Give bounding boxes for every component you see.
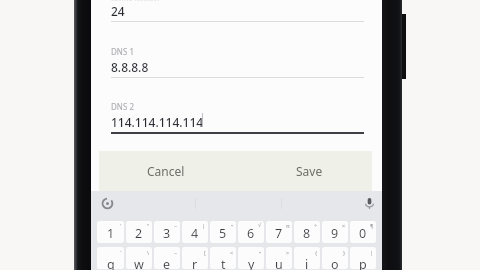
staticText: 8: [303, 225, 311, 242]
staticText: q: [107, 256, 115, 270]
button[interactable]: [126, 247, 152, 269]
staticText: |: [202, 222, 206, 229]
button[interactable]: [182, 247, 208, 269]
staticText: o: [331, 256, 339, 270]
staticText: Save: [296, 163, 323, 179]
staticText: 2: [135, 225, 143, 242]
staticText: p: [359, 256, 367, 270]
staticText: ~: [174, 222, 178, 229]
staticText: ÷: [314, 222, 318, 229]
button[interactable]: [182, 221, 208, 243]
staticText: DNS 1: [111, 46, 134, 57]
button[interactable]: [294, 221, 320, 243]
staticText: |: [370, 249, 374, 256]
staticText: √: [258, 222, 262, 228]
staticText: 8.8.8.8: [111, 59, 149, 75]
button[interactable]: [126, 221, 152, 243]
button[interactable]: [97, 221, 124, 243]
button[interactable]: Save: [280, 151, 339, 191]
staticText: ¶: [370, 222, 374, 229]
button[interactable]: [238, 247, 264, 269]
button[interactable]: [350, 221, 376, 243]
button[interactable]: [322, 221, 348, 243]
staticText: 0: [359, 225, 367, 242]
staticText: 9: [331, 225, 339, 242]
staticText: 24: [111, 3, 125, 19]
staticText: y: [248, 256, 255, 270]
staticText: w: [134, 256, 144, 270]
button[interactable]: [154, 247, 180, 269]
button[interactable]: [154, 221, 180, 243]
button[interactable]: [210, 247, 236, 269]
button[interactable]: [210, 221, 236, 243]
button[interactable]: Clipboard: [99, 195, 115, 211]
staticText: 114.114.114.114: [111, 114, 204, 130]
staticText: ": [147, 222, 150, 229]
staticText: •: [231, 222, 234, 229]
button[interactable]: [322, 247, 348, 269]
staticText: Prefix length: [111, 0, 159, 1]
staticText: 6: [247, 225, 255, 242]
button[interactable]: [266, 221, 292, 243]
staticText: π: [286, 222, 290, 229]
button[interactable]: Voice input: [361, 195, 377, 211]
staticText: 7: [275, 225, 283, 242]
button[interactable]: [97, 247, 124, 269]
staticText: u: [275, 256, 283, 270]
staticText: }: [343, 249, 346, 256]
button[interactable]: Cancel: [129, 151, 202, 191]
staticText: ×: [342, 222, 346, 229]
staticText: {: [315, 249, 318, 256]
staticText: \: [147, 249, 150, 256]
staticText: i: [305, 256, 309, 270]
staticText: t: [221, 256, 226, 270]
staticText: [: [204, 249, 206, 256]
staticText: e: [163, 256, 171, 270]
staticText: 3: [163, 225, 171, 242]
staticText: >: [286, 249, 290, 256]
staticText: Cancel: [147, 163, 185, 179]
button[interactable]: [294, 247, 320, 269]
button[interactable]: [238, 221, 264, 243]
staticText: 1: [107, 225, 115, 242]
button[interactable]: [350, 247, 376, 269]
button[interactable]: [266, 247, 292, 269]
staticText: <: [230, 249, 234, 256]
staticText: •: [259, 249, 262, 256]
staticText: 4: [191, 225, 199, 242]
staticText: ': [120, 222, 122, 229]
staticText: `: [120, 249, 122, 256]
staticText: r: [192, 256, 198, 270]
staticText: DNS 2: [111, 101, 134, 112]
staticText: 5: [219, 225, 227, 242]
staticText: ~: [174, 249, 178, 256]
